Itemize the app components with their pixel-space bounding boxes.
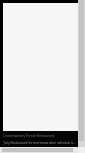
button[interactable]: Vertical scroll bar xyxy=(78,0,85,147)
staticText: "July Restaurant for enormous wine selec… xyxy=(3,141,76,145)
button[interactable]: Contemporary French Restaurant xyxy=(0,131,78,147)
staticText: Contemporary French Restaurant xyxy=(3,134,54,138)
button[interactable]: Horizontal scroll bar xyxy=(0,147,78,153)
